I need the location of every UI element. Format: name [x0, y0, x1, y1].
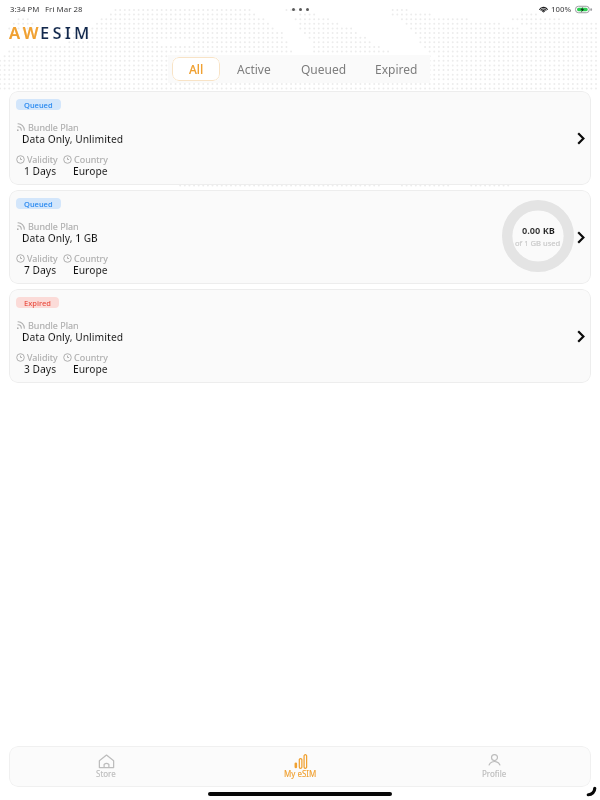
staticText: of 1 GB used	[515, 238, 561, 248]
button[interactable]: My eSIM	[203, 746, 397, 785]
button[interactable]: Open plan details	[569, 217, 591, 257]
staticText: 100%	[551, 4, 572, 15]
staticText: 7 Days	[24, 263, 57, 277]
staticText: Country	[74, 153, 108, 165]
button[interactable]: Queued	[9, 91, 591, 185]
staticText: Bundle Plan	[28, 319, 79, 331]
staticText: Fri Mar 28	[45, 4, 83, 15]
staticText: Validity	[27, 252, 58, 264]
staticText: 3 Days	[24, 362, 57, 376]
staticText: Expired	[375, 61, 418, 77]
button[interactable]: Profile	[397, 746, 591, 785]
staticText: Validity	[27, 351, 58, 363]
staticText: Europe	[73, 164, 108, 178]
staticText: Bundle Plan	[28, 220, 79, 232]
button[interactable]: Queued	[297, 57, 351, 81]
button[interactable]: Open plan details	[569, 118, 591, 158]
staticText: Store	[96, 768, 116, 779]
staticText: Queued	[24, 100, 53, 110]
staticText: Bundle Plan	[28, 121, 79, 133]
staticText: 0.00 KB	[522, 224, 555, 237]
button[interactable]: Active	[230, 57, 278, 81]
button[interactable]: Expired	[9, 289, 591, 383]
staticText: Country	[74, 252, 108, 264]
button[interactable]: Queued	[9, 190, 591, 284]
staticText: Data Only, 1 GB	[22, 231, 98, 245]
staticText: 1 Days	[24, 164, 57, 178]
button[interactable]: All	[172, 57, 220, 81]
staticText: Queued	[301, 61, 347, 77]
staticText: 3:34 PM	[10, 4, 40, 15]
staticText: Country	[74, 351, 108, 363]
button[interactable]: Store	[9, 746, 203, 785]
button[interactable]: Expired	[371, 57, 421, 81]
staticText: Validity	[27, 153, 58, 165]
staticText: Data Only, Unlimited	[22, 132, 124, 146]
staticText: Europe	[73, 362, 108, 376]
staticText: Data Only, Unlimited	[22, 330, 124, 344]
staticText: My eSIM	[284, 768, 317, 779]
staticText: Profile	[482, 768, 507, 779]
button[interactable]: Open plan details	[569, 316, 591, 356]
staticText: Europe	[73, 263, 108, 277]
staticText: ESIM	[40, 21, 93, 43]
staticText: All	[189, 61, 204, 77]
staticText: AW	[9, 21, 42, 43]
staticText: Active	[237, 61, 271, 77]
staticText: Expired	[24, 298, 51, 308]
staticText: Queued	[24, 199, 53, 209]
